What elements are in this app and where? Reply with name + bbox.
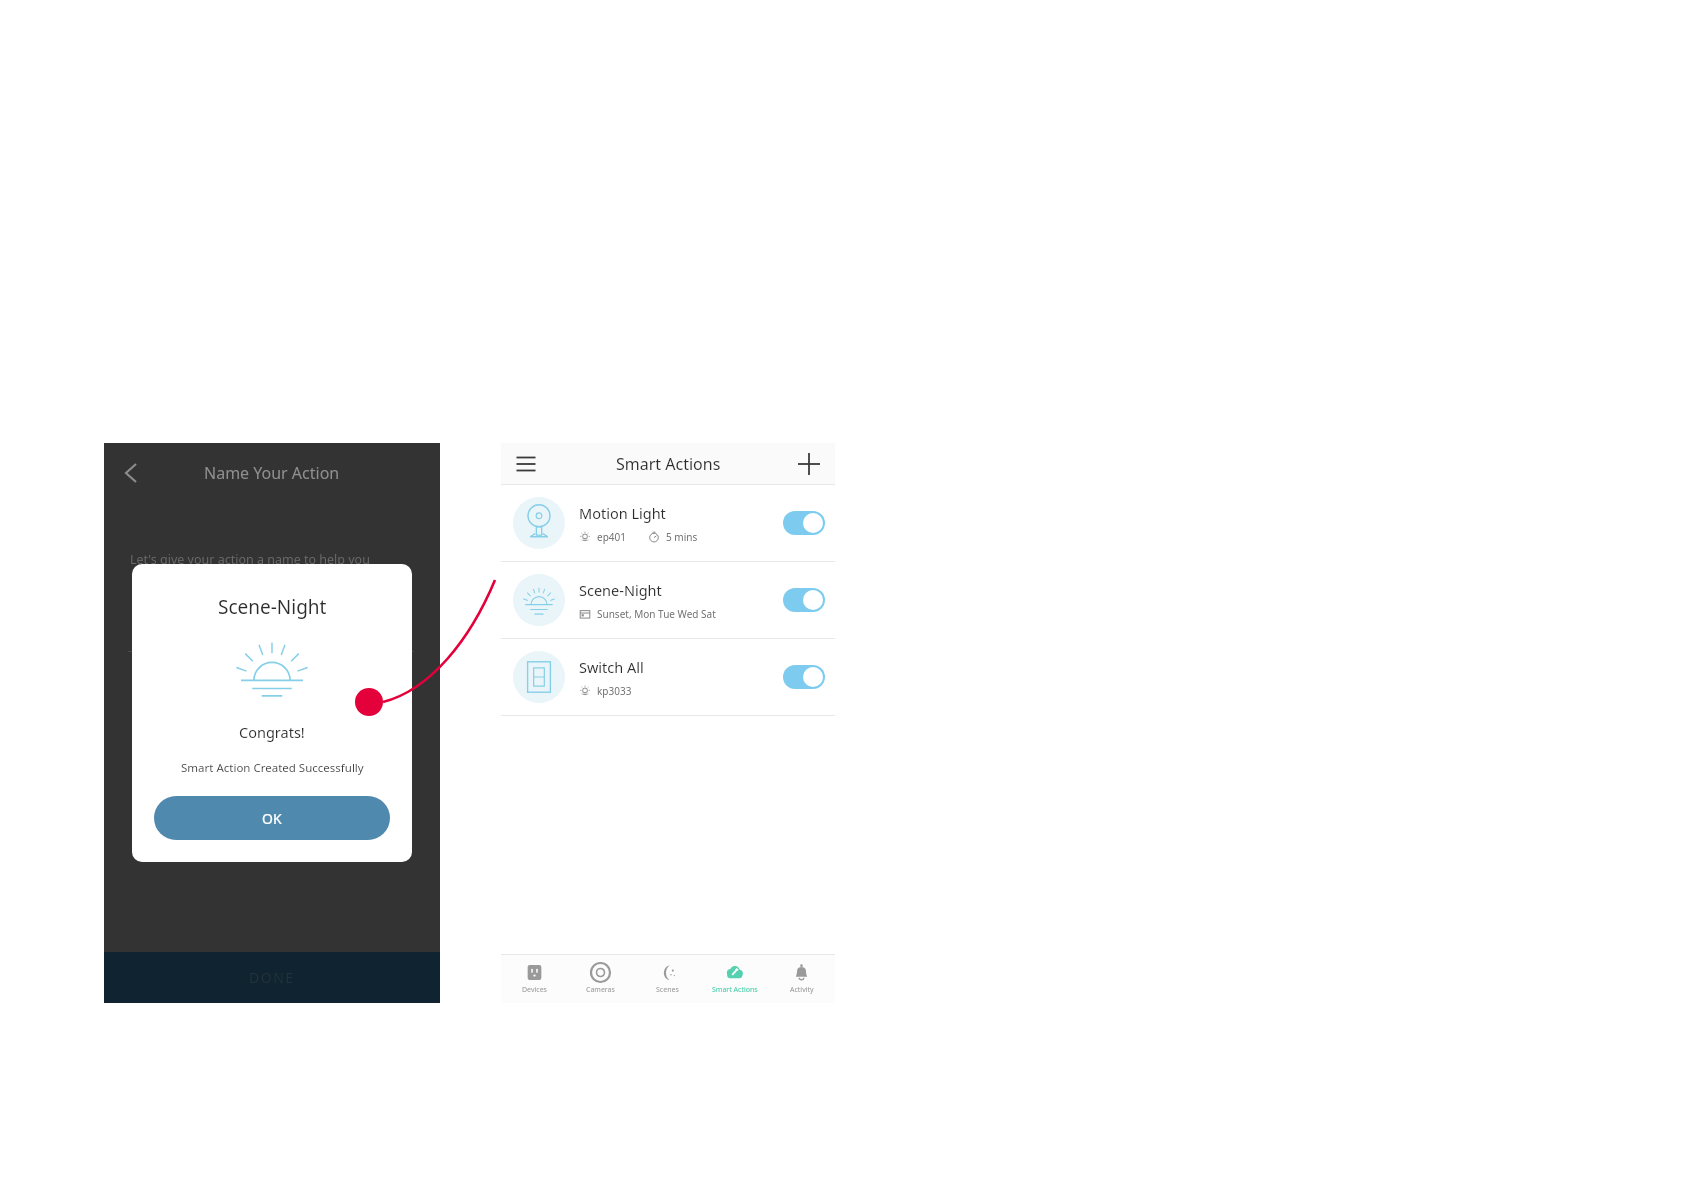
- staticText: 5 mins: [666, 530, 698, 544]
- staticText: Smart Actions: [712, 985, 758, 995]
- button[interactable]: Back: [114, 456, 148, 490]
- staticText: Devices: [522, 985, 547, 995]
- staticText: Scene-Night: [579, 580, 662, 600]
- button[interactable]: Motion Light: [501, 485, 835, 561]
- button[interactable]: Devices: [501, 955, 567, 1003]
- button[interactable]: Menu: [511, 449, 541, 479]
- button[interactable]: Scene-Night: [501, 562, 835, 638]
- staticText: Let's give your action a name to help yo…: [130, 551, 370, 568]
- staticText: Cameras: [586, 985, 615, 995]
- button[interactable]: Toggle Scene-Night: [783, 588, 825, 612]
- button[interactable]: Activity: [768, 955, 835, 1003]
- staticText: kp3033: [597, 684, 632, 698]
- staticText: OK: [262, 809, 282, 828]
- button[interactable]: OK: [154, 796, 390, 840]
- staticText: Name Your Action: [204, 462, 340, 484]
- staticText: Activity: [790, 985, 814, 995]
- staticText: Sunset, Mon Tue Wed Sat: [597, 607, 716, 621]
- button[interactable]: Cameras: [567, 955, 634, 1003]
- staticText: DONE: [249, 968, 295, 987]
- button[interactable]: Switch All: [501, 639, 835, 715]
- button[interactable]: Scenes: [634, 955, 701, 1003]
- staticText: Smart Action Created Successfully: [181, 760, 364, 776]
- button[interactable]: Toggle Switch All: [783, 665, 825, 689]
- staticText: Switch All: [579, 657, 644, 677]
- button[interactable]: Add: [793, 448, 825, 480]
- button[interactable]: Toggle Motion Light: [783, 511, 825, 535]
- staticText: Scenes: [656, 985, 679, 995]
- staticText: Motion Light: [579, 503, 666, 523]
- staticText: Scene-Night: [218, 594, 327, 620]
- staticText: Congrats!: [239, 722, 305, 742]
- staticText: Smart Actions: [616, 453, 721, 475]
- staticText: ep401: [597, 530, 626, 544]
- button[interactable]: Smart Actions: [701, 955, 768, 1003]
